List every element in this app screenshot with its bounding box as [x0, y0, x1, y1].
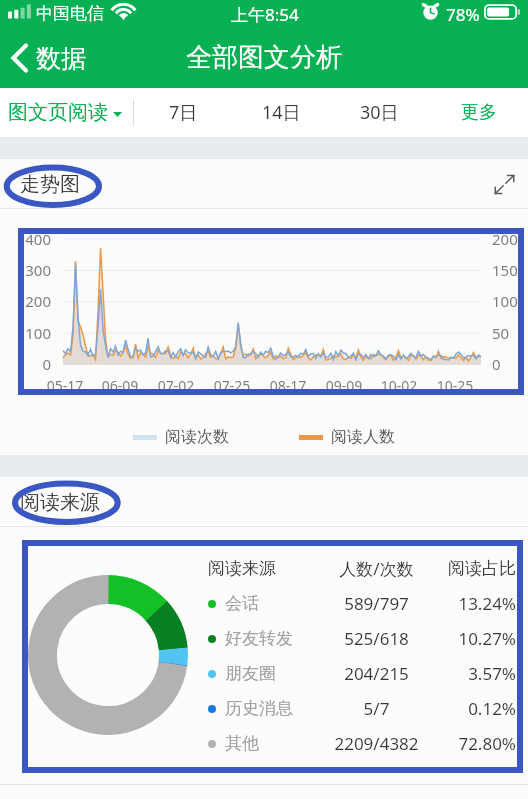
staticText: 150: [492, 260, 528, 280]
staticText: 08-17: [260, 376, 316, 395]
button[interactable]: 阅读人数: [299, 427, 395, 447]
staticText: 人数/次数: [328, 557, 425, 580]
button[interactable]: 7日: [134, 88, 232, 137]
staticText: 5/7: [328, 697, 425, 720]
staticText: 09-09: [316, 376, 372, 395]
staticText: 13.24%: [425, 592, 516, 615]
staticText: 7日: [169, 100, 198, 125]
staticText: 数据: [36, 43, 86, 74]
staticText: 525/618: [328, 627, 425, 650]
button[interactable]: 历史消息: [208, 691, 516, 726]
staticText: 朋友圈: [225, 663, 276, 684]
button[interactable]: 好友转发: [208, 621, 516, 656]
staticText: 历史消息: [225, 698, 293, 719]
staticText: 400: [6, 229, 51, 249]
staticText: 50: [492, 323, 528, 343]
staticText: 0: [6, 354, 51, 374]
button[interactable]: 阅读次数: [133, 427, 229, 447]
staticText: 阅读来源: [20, 490, 100, 515]
staticText: 会话: [225, 593, 259, 614]
staticText: 阅读人数: [331, 427, 395, 447]
staticText: 05-17: [37, 376, 93, 395]
button[interactable]: 会话: [208, 586, 516, 621]
staticText: 78%: [446, 3, 480, 26]
staticText: 0: [492, 354, 528, 374]
staticText: 阅读占比: [425, 558, 516, 579]
staticText: 好友转发: [225, 628, 293, 649]
staticText: 图文页阅读: [8, 100, 108, 125]
staticText: 上午8:54: [231, 3, 299, 26]
staticText: 300: [6, 260, 51, 280]
staticText: 100: [6, 323, 51, 343]
staticText: 其他: [225, 733, 259, 754]
staticText: 14日: [262, 100, 301, 125]
button[interactable]: 其他: [208, 726, 516, 761]
staticText: 200: [6, 291, 51, 311]
staticText: 589/797: [328, 592, 425, 615]
staticText: 100: [492, 291, 528, 311]
staticText: 2209/4382: [328, 732, 425, 755]
staticText: 走势图: [20, 172, 80, 197]
staticText: 全部图文分析: [186, 41, 342, 74]
button[interactable]: 全屏查看: [494, 174, 515, 195]
button[interactable]: 朋友圈: [208, 656, 516, 691]
button[interactable]: 走势图: [20, 172, 80, 197]
staticText: 阅读次数: [165, 427, 229, 447]
staticText: 07-02: [148, 376, 204, 395]
button[interactable]: 更多: [429, 88, 528, 137]
button[interactable]: 图文页阅读: [0, 88, 133, 137]
staticText: 200: [492, 229, 528, 249]
staticText: 72.80%: [425, 732, 516, 755]
staticText: 07-25: [204, 376, 260, 395]
staticText: 10.27%: [425, 627, 516, 650]
staticText: 10-02: [371, 376, 427, 395]
staticText: 204/215: [328, 662, 425, 685]
staticText: 30日: [360, 100, 399, 125]
staticText: 中国电信: [36, 3, 104, 24]
button[interactable]: 30日: [330, 88, 429, 137]
staticText: 3.57%: [425, 662, 516, 685]
staticText: 0.12%: [425, 697, 516, 720]
staticText: 10-25: [427, 376, 483, 395]
staticText: 更多: [461, 101, 497, 124]
button[interactable]: 返回 数据: [0, 28, 100, 88]
staticText: 阅读来源: [208, 558, 328, 579]
button[interactable]: 阅读来源: [20, 490, 100, 515]
staticText: 06-09: [92, 376, 148, 395]
button[interactable]: 14日: [232, 88, 330, 137]
